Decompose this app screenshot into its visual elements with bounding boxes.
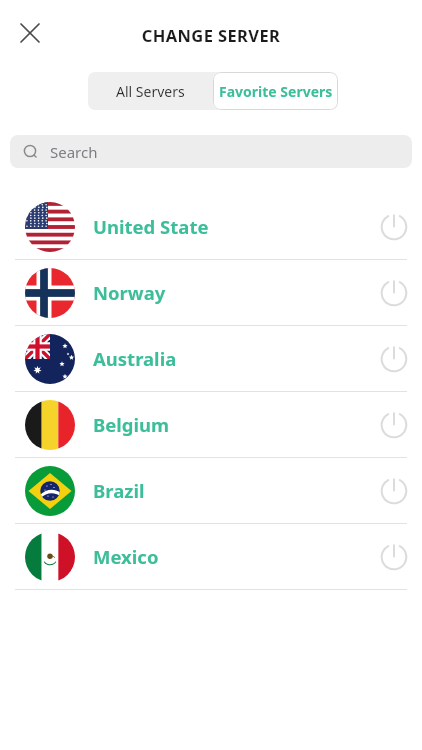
staticText: Search	[50, 142, 98, 162]
button[interactable]: Brazil	[0, 458, 422, 523]
staticText: Favorite Servers	[219, 82, 333, 101]
staticText: Norway	[93, 280, 372, 305]
staticText: Australia	[93, 346, 372, 371]
button[interactable]: Connect to Australia	[372, 337, 416, 381]
button[interactable]: Connect to Norway	[372, 271, 416, 315]
staticText: Brazil	[93, 478, 372, 503]
staticText: Mexico	[93, 544, 372, 569]
button[interactable]: Connect to United State	[372, 205, 416, 249]
button[interactable]: Belgium	[0, 392, 422, 457]
button[interactable]: All Servers	[88, 72, 213, 110]
staticText: All Servers	[116, 82, 185, 101]
staticText: Belgium	[93, 412, 372, 437]
button[interactable]: Connect to Mexico	[372, 535, 416, 579]
button[interactable]: Connect to Brazil	[372, 469, 416, 513]
button[interactable]: Connect to Belgium	[372, 403, 416, 447]
button[interactable]: Australia	[0, 326, 422, 391]
button[interactable]: Norway	[0, 260, 422, 325]
button[interactable]: Favorite Servers	[213, 72, 338, 110]
button[interactable]: United State	[0, 194, 422, 259]
button[interactable]: Close	[12, 15, 48, 51]
staticText: United State	[93, 214, 372, 239]
staticText: CHANGE SERVER	[0, 24, 422, 46]
button[interactable]: Search	[10, 135, 412, 168]
button[interactable]: Mexico	[0, 524, 422, 589]
